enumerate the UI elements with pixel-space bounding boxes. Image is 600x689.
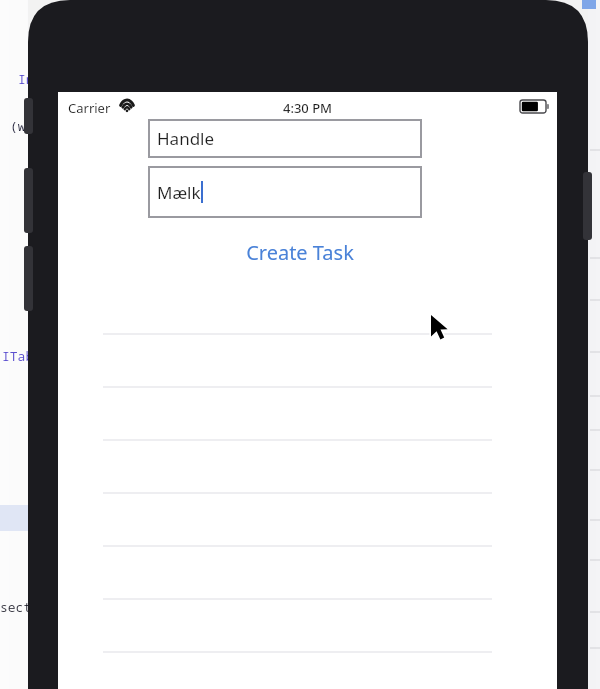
staticText: (w — [10, 117, 26, 135]
button[interactable]: Mælk — [148, 166, 422, 218]
staticText: ITab — [2, 347, 34, 365]
staticText: Handle — [157, 127, 215, 150]
staticText: Carrier — [68, 99, 111, 117]
button[interactable]: Handle — [148, 119, 422, 158]
staticText: In — [18, 70, 34, 88]
staticText: 4:30 PM — [58, 99, 557, 117]
staticText: Create Task — [246, 239, 354, 266]
other: Pointer — [431, 315, 453, 345]
staticText: sect — [0, 598, 32, 616]
staticText: Mælk — [157, 181, 201, 204]
button[interactable]: Create Task — [200, 236, 400, 268]
